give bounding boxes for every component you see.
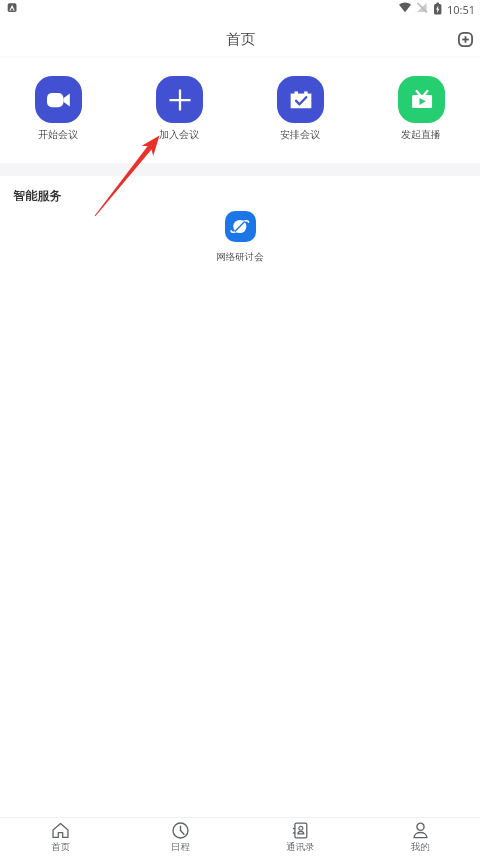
button[interactable]: 网络研讨会 bbox=[195, 211, 285, 263]
button[interactable]: 通讯录 bbox=[240, 818, 360, 856]
staticText: 安排会议 bbox=[280, 128, 320, 141]
staticText: 首页 bbox=[226, 30, 255, 48]
staticText: 网络研讨会 bbox=[216, 251, 264, 263]
staticText: 我的 bbox=[411, 841, 430, 853]
staticText: 首页 bbox=[51, 841, 70, 853]
button[interactable]: 开始会议 bbox=[13, 76, 103, 141]
button[interactable]: 加入会议 bbox=[134, 76, 224, 141]
button[interactable]: Add bbox=[450, 24, 480, 54]
staticText: 加入会议 bbox=[159, 128, 199, 141]
staticText: 日程 bbox=[171, 841, 190, 853]
button[interactable]: 首页 bbox=[0, 818, 120, 856]
staticText: 10:51 bbox=[447, 2, 476, 17]
staticText: 开始会议 bbox=[38, 128, 78, 141]
staticText: 通讯录 bbox=[286, 841, 315, 853]
staticText: 智能服务 bbox=[13, 188, 61, 203]
button[interactable]: 我的 bbox=[360, 818, 480, 856]
button[interactable]: 发起直播 bbox=[376, 76, 466, 141]
staticText: 发起直播 bbox=[401, 128, 441, 141]
button[interactable]: 日程 bbox=[120, 818, 240, 856]
button[interactable]: 安排会议 bbox=[255, 76, 345, 141]
